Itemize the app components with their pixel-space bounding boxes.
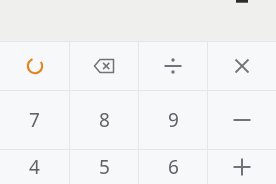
button[interactable]: 4 [0, 150, 69, 184]
button[interactable]: Backspace [70, 42, 138, 90]
staticText: 5 [99, 154, 110, 180]
staticText: 9 [168, 107, 179, 133]
button[interactable]: Minus [208, 91, 276, 149]
staticText: 4 [29, 154, 40, 180]
button[interactable]: 8 [70, 91, 138, 149]
button[interactable]: Multiply [208, 42, 276, 90]
button[interactable]: 5 [70, 150, 138, 184]
button[interactable]: Plus [208, 150, 276, 184]
button[interactable]: 7 [0, 91, 69, 149]
staticText: 7 [29, 107, 40, 133]
button[interactable]: Divide [139, 42, 207, 90]
button[interactable]: 6 [139, 150, 207, 184]
button[interactable]: 9 [139, 91, 207, 149]
staticText: 6 [168, 154, 179, 180]
button[interactable]: Clear [0, 42, 69, 90]
staticText: 8 [99, 107, 110, 133]
